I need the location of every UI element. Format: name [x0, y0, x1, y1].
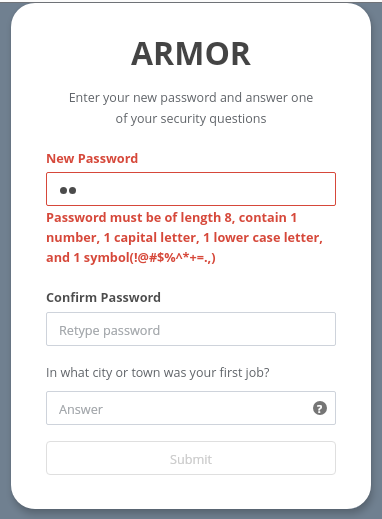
staticText: Confirm Password — [46, 288, 162, 305]
button[interactable] — [46, 172, 336, 206]
button[interactable]: Answer — [46, 391, 336, 425]
staticText: In what city or town was your first job? — [46, 364, 270, 381]
button[interactable]: Retype password — [46, 312, 336, 346]
staticText: New Password — [46, 149, 139, 166]
staticText: Retype password — [59, 321, 161, 338]
staticText: Answer — [59, 400, 104, 417]
button[interactable]: Help — [313, 401, 327, 415]
staticText: Submit — [170, 450, 213, 467]
staticText: Enter your new password and answer one o… — [57, 89, 325, 126]
button[interactable]: Submit — [46, 441, 336, 475]
staticText: ? — [317, 401, 323, 415]
staticText: ARMOR — [46, 31, 336, 75]
staticText: Password must be of length 8, contain 1 … — [46, 208, 336, 265]
